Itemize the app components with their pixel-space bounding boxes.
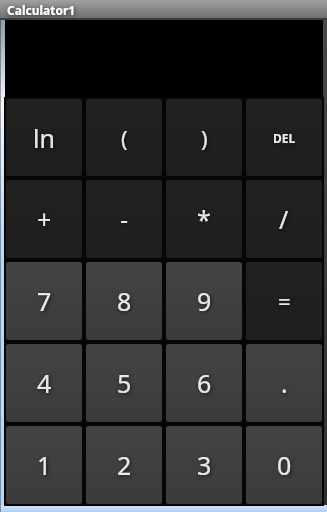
staticText: = xyxy=(278,286,291,316)
staticText: 8 xyxy=(117,284,132,318)
button[interactable]: 8 xyxy=(86,262,162,340)
staticText: 1 xyxy=(37,448,52,482)
button[interactable]: + xyxy=(6,180,82,258)
button[interactable]: - xyxy=(86,180,162,258)
staticText: * xyxy=(197,202,211,236)
button[interactable]: 2 xyxy=(86,426,162,504)
staticText: 6 xyxy=(197,366,212,400)
button[interactable]: = xyxy=(246,262,322,340)
button[interactable]: ) xyxy=(166,99,242,176)
button[interactable]: 0 xyxy=(246,426,322,504)
staticText: ) xyxy=(201,123,208,153)
staticText: Calculator1 xyxy=(7,2,76,18)
button[interactable]: 1 xyxy=(6,426,82,504)
staticText: DEL xyxy=(273,130,296,146)
button[interactable]: * xyxy=(166,180,242,258)
button[interactable]: 3 xyxy=(166,426,242,504)
button[interactable]: 5 xyxy=(86,344,162,422)
button[interactable]: ln xyxy=(6,99,82,176)
button[interactable]: 4 xyxy=(6,344,82,422)
button[interactable]: . xyxy=(246,344,322,422)
staticText: 7 xyxy=(37,284,52,318)
button[interactable]: ( xyxy=(86,99,162,176)
staticText: 0 xyxy=(277,448,292,482)
staticText: 2 xyxy=(117,448,132,482)
button[interactable]: 6 xyxy=(166,344,242,422)
button[interactable]: 7 xyxy=(6,262,82,340)
staticText: / xyxy=(279,202,289,236)
staticText: . xyxy=(281,366,288,400)
staticText: + xyxy=(37,202,52,236)
staticText: ( xyxy=(121,123,128,153)
staticText: 3 xyxy=(197,448,212,482)
staticText: 4 xyxy=(37,366,52,400)
button[interactable]: DEL xyxy=(246,99,322,176)
button[interactable]: / xyxy=(246,180,322,258)
staticText: 9 xyxy=(197,284,212,318)
staticText: - xyxy=(120,202,129,236)
button[interactable]: 9 xyxy=(166,262,242,340)
staticText: ln xyxy=(33,121,55,155)
staticText: 5 xyxy=(117,366,132,400)
